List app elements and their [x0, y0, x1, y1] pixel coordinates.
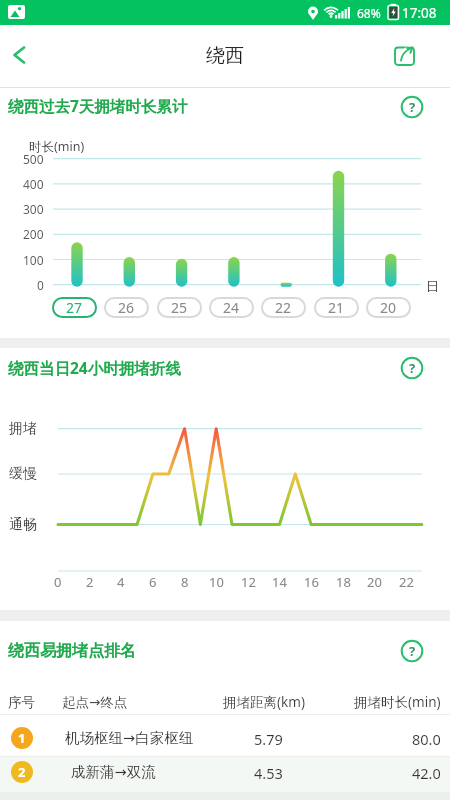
staticText: 0: [54, 573, 62, 589]
staticText: 25: [171, 298, 188, 317]
staticText: 拥堵时长(min): [354, 693, 441, 711]
staticText: ?: [409, 642, 416, 660]
button[interactable]: 22: [261, 297, 306, 318]
staticText: 100: [23, 252, 44, 268]
staticText: 4.53: [254, 763, 283, 781]
staticText: 300: [23, 201, 44, 217]
button[interactable]: ?: [400, 356, 424, 380]
staticText: 400: [23, 176, 44, 192]
button[interactable]: 27: [52, 297, 97, 318]
staticText: 42.0: [412, 763, 441, 781]
staticText: 80.0: [412, 729, 441, 747]
staticText: 日: [426, 278, 439, 294]
staticText: 14: [272, 573, 287, 589]
staticText: 绕西当日24小时拥堵折线: [8, 357, 181, 378]
staticText: 22: [399, 573, 414, 589]
staticText: 10: [209, 573, 224, 589]
staticText: 26: [118, 298, 135, 317]
staticText: 时长(min): [29, 138, 85, 155]
staticText: 24: [223, 298, 240, 317]
button[interactable]: [390, 45, 420, 75]
staticText: 1: [18, 729, 26, 747]
button[interactable]: 24: [209, 297, 254, 318]
staticText: 绕西易拥堵点排名: [8, 641, 136, 661]
staticText: 机场枢纽→白家枢纽: [65, 729, 194, 747]
staticText: 12: [241, 573, 256, 589]
button[interactable]: [4, 41, 36, 73]
staticText: 拥堵: [9, 420, 37, 438]
staticText: 21: [328, 298, 345, 317]
staticText: 8: [181, 573, 189, 589]
staticText: ?: [409, 98, 416, 116]
staticText: 17:08: [402, 4, 437, 22]
staticText: 0: [37, 277, 44, 293]
staticText: 通畅: [9, 516, 37, 534]
button[interactable]: 25: [157, 297, 202, 318]
staticText: 500: [23, 151, 44, 167]
staticText: ?: [409, 359, 416, 377]
staticText: 绕西: [206, 44, 244, 68]
staticText: 缓慢: [9, 465, 37, 483]
staticText: 20: [380, 298, 397, 317]
button[interactable]: 21: [314, 297, 359, 318]
staticText: 27: [66, 298, 83, 317]
staticText: 2: [18, 763, 26, 781]
staticText: 绕西过去7天拥堵时长累计: [8, 95, 188, 116]
staticText: 5.79: [254, 729, 283, 747]
staticText: 序号: [8, 694, 35, 711]
button[interactable]: 26: [104, 297, 149, 318]
staticText: 起点→终点: [62, 694, 128, 711]
staticText: 16: [304, 573, 319, 589]
button[interactable]: ?: [400, 639, 424, 663]
staticText: 拥堵距离(km): [223, 693, 305, 711]
staticText: 成新蒲→双流: [71, 763, 156, 781]
button[interactable]: 1: [0, 721, 450, 755]
staticText: 68%: [357, 5, 381, 21]
staticText: 6: [149, 573, 157, 589]
button[interactable]: ?: [400, 95, 424, 119]
staticText: 18: [336, 573, 351, 589]
staticText: 20: [367, 573, 382, 589]
staticText: 200: [23, 226, 44, 242]
button[interactable]: 20: [366, 297, 411, 318]
staticText: 22: [275, 298, 292, 317]
staticText: 2: [86, 573, 94, 589]
button[interactable]: 2: [0, 755, 450, 789]
staticText: 4: [117, 573, 125, 589]
